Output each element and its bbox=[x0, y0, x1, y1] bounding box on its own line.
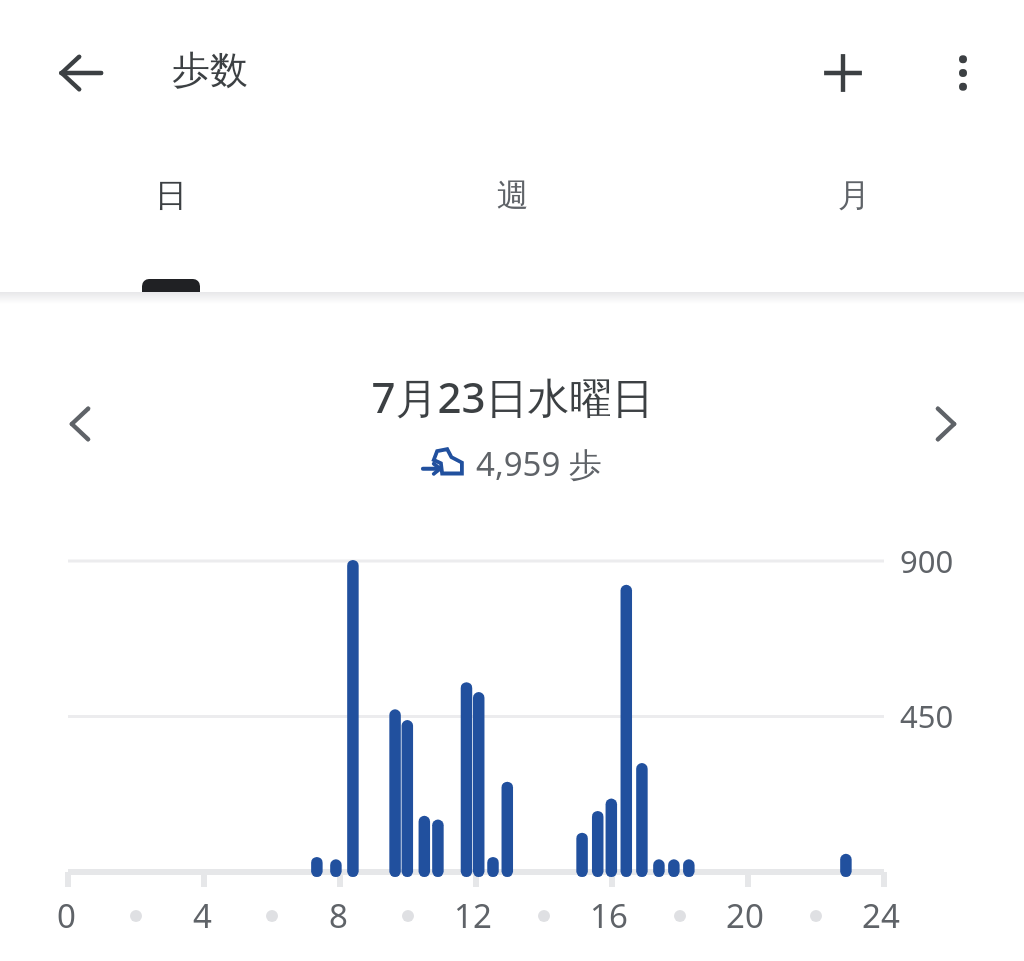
button[interactable]: Previous day bbox=[46, 390, 114, 458]
button[interactable]: 月 bbox=[683, 175, 1024, 271]
staticText: 月 bbox=[838, 175, 870, 215]
button[interactable]: 週 bbox=[342, 175, 683, 271]
button[interactable]: 日 bbox=[0, 175, 342, 271]
button[interactable]: Next day bbox=[912, 390, 980, 458]
staticText: 16 bbox=[590, 893, 628, 938]
staticText: 7月23日水曜日 bbox=[371, 368, 654, 425]
staticText: 900 bbox=[900, 540, 954, 582]
staticText: 12 bbox=[454, 893, 492, 938]
staticText: 週 bbox=[497, 175, 529, 215]
staticText: 4 bbox=[193, 893, 212, 938]
staticText: 日 bbox=[155, 175, 187, 215]
staticText: 0 bbox=[57, 893, 76, 938]
button[interactable]: More options bbox=[930, 40, 996, 106]
staticText: 歩数 bbox=[172, 46, 248, 94]
staticText: 20 bbox=[726, 893, 764, 938]
button[interactable]: Add bbox=[810, 40, 876, 106]
staticText: 4,959 歩 bbox=[476, 441, 602, 486]
staticText: 8 bbox=[329, 893, 348, 938]
staticText: 24 bbox=[862, 893, 900, 938]
button[interactable]: Back bbox=[48, 40, 114, 106]
staticText: 450 bbox=[900, 695, 954, 737]
